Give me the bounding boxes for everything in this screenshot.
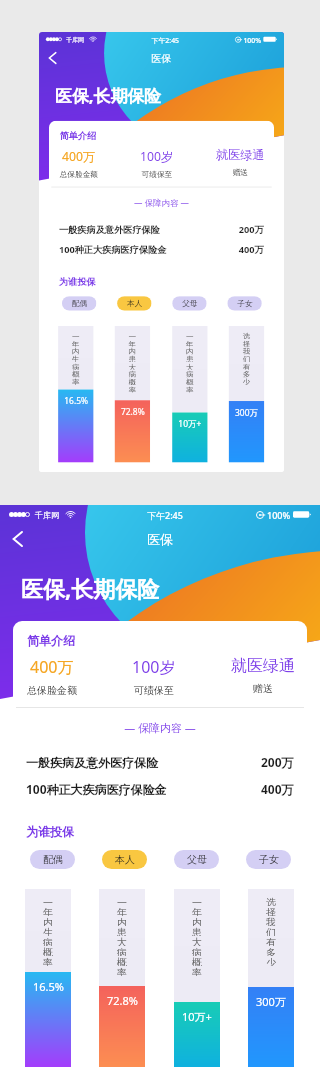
staticText: 概 (129, 377, 136, 385)
staticText: 一 (129, 331, 136, 339)
button[interactable]: 400万 (27, 656, 77, 697)
button[interactable]: 100种正大疾病医疗保险金 (26, 781, 294, 797)
staticText: 内 (129, 347, 136, 354)
staticText: 一 (117, 896, 127, 906)
staticText: 子女 (237, 298, 253, 308)
staticText: 择 (266, 906, 276, 916)
button[interactable]: 100种正大疾病医疗保险金 (59, 243, 264, 256)
staticText: 一般疾病及意外医疗保险 (26, 755, 158, 770)
staticText: 100种正大疾病医疗保险金 (59, 243, 167, 256)
staticText: 我 (243, 347, 250, 354)
staticText: 多 (266, 946, 276, 956)
staticText: 医保,长期保险 (55, 84, 161, 107)
button[interactable]: 父母 (172, 296, 207, 311)
staticText: 率 (43, 956, 53, 966)
button[interactable]: 就医绿通 (216, 148, 265, 177)
staticText: 子女 (259, 853, 279, 866)
button[interactable]: 选 (248, 889, 294, 1067)
button[interactable]: 子女 (227, 296, 262, 311)
staticText: 生 (72, 354, 80, 362)
button[interactable]: 子女 (246, 850, 291, 869)
staticText: 医保 (147, 531, 173, 547)
button[interactable]: 就医绿通 (231, 656, 295, 695)
staticText: 病 (43, 936, 53, 946)
button[interactable]: 100岁 (140, 148, 174, 179)
button[interactable]: 400万 (60, 148, 98, 179)
staticText: 16.5% (64, 395, 88, 406)
staticText: 200万 (261, 754, 294, 770)
staticText: 赠送 (253, 682, 273, 695)
staticText: 就医绿通 (231, 656, 295, 676)
button[interactable]: 父母 (174, 850, 219, 869)
button[interactable]: 一 (99, 889, 145, 1067)
staticText: 10万+ (182, 1009, 212, 1024)
button[interactable]: 选 (229, 326, 264, 462)
staticText: 可绩保至 (134, 684, 174, 697)
button[interactable]: 一 (115, 326, 150, 462)
button[interactable]: 本人 (102, 850, 147, 869)
staticText: 们 (243, 354, 250, 362)
staticText: 100% (243, 35, 262, 44)
staticText: — 保障内容 — (49, 197, 274, 208)
button[interactable]: 一 (174, 889, 220, 1067)
staticText: 大 (129, 362, 136, 370)
staticText: 400万 (30, 656, 74, 678)
staticText: 为谁投保 (26, 824, 74, 839)
staticText: 简单介绍 (27, 633, 75, 648)
staticText: 赠送 (233, 167, 248, 177)
staticText: 选 (243, 331, 250, 339)
staticText: 年 (186, 339, 194, 347)
staticText: 本人 (115, 853, 135, 866)
button[interactable]: 一般疾病及意外医疗保险 (26, 754, 294, 770)
staticText: 一 (186, 331, 194, 339)
staticText: 患 (129, 354, 136, 362)
staticText: 有 (266, 936, 276, 946)
staticText: 病 (129, 370, 136, 377)
staticText: 400万 (261, 781, 294, 797)
staticText: 配偶 (72, 298, 87, 308)
staticText: 一 (43, 896, 53, 906)
staticText: 300万 (235, 406, 258, 418)
staticText: 内 (192, 916, 202, 926)
staticText: 本人 (127, 298, 142, 308)
button[interactable]: 一般疾病及意外医疗保险 (59, 223, 264, 235)
staticText: 病 (186, 370, 194, 377)
staticText: 内 (117, 916, 127, 926)
staticText: 医保,长期保险 (21, 573, 160, 603)
staticText: 大 (192, 936, 202, 946)
button[interactable]: 一 (58, 326, 93, 462)
button[interactable]: 一 (25, 889, 71, 1067)
button[interactable]: 本人 (117, 296, 152, 311)
button[interactable]: Back (7, 528, 29, 550)
staticText: 一般疾病及意外医疗保险 (59, 223, 160, 235)
staticText: 年 (129, 339, 136, 347)
staticText: 千库网 (66, 36, 84, 43)
staticText: 配偶 (43, 853, 63, 866)
staticText: 父母 (182, 298, 197, 308)
button[interactable]: 配偶 (30, 850, 75, 869)
staticText: 大 (117, 936, 127, 946)
button[interactable]: 一 (172, 326, 207, 462)
staticText: 概 (43, 946, 53, 956)
button[interactable]: 配偶 (62, 296, 96, 311)
staticText: 总保脸金额 (27, 684, 77, 697)
staticText: 内 (72, 347, 80, 354)
staticText: 就医绿通 (216, 148, 265, 163)
staticText: 患 (186, 354, 194, 362)
staticText: 概 (186, 377, 194, 385)
staticText: 病 (117, 946, 127, 956)
staticText: 100岁 (132, 656, 176, 678)
staticText: 多 (243, 370, 250, 377)
staticText: 患 (117, 926, 127, 936)
staticText: 选 (266, 896, 276, 906)
staticText: 少 (266, 956, 276, 966)
staticText: 病 (72, 362, 80, 370)
button[interactable]: 100岁 (132, 656, 176, 697)
staticText: 100种正大疾病医疗保险金 (26, 781, 167, 797)
staticText: 300万 (256, 994, 286, 1009)
staticText: 患 (192, 926, 202, 936)
staticText: 年 (72, 339, 80, 347)
staticText: 一 (192, 896, 202, 906)
staticText: 72.8% (121, 406, 145, 417)
button[interactable]: Back (44, 50, 61, 66)
